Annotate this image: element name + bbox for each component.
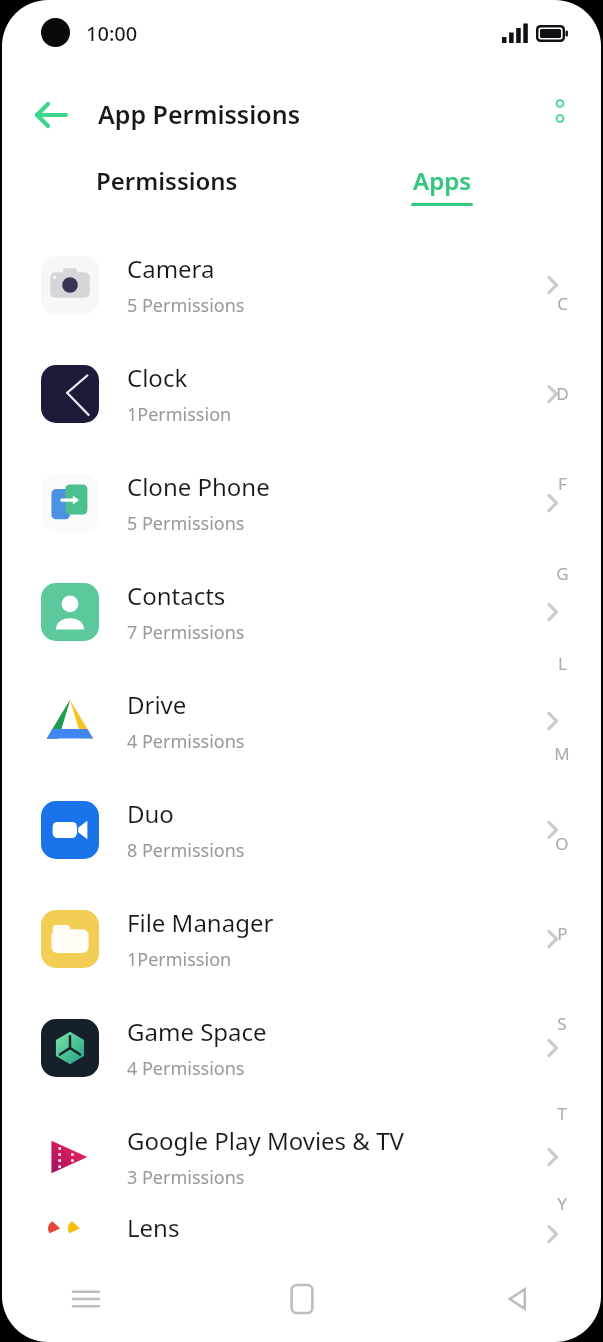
button[interactable]: Apps — [337, 152, 547, 222]
button[interactable]: Google Play Movies & TV — [2, 1102, 601, 1211]
button[interactable]: Duo — [2, 775, 601, 884]
button[interactable]: More options — [535, 86, 585, 136]
button[interactable]: G — [545, 556, 579, 590]
staticText: 5 Permissions — [127, 293, 245, 318]
staticText: Clone Phone — [127, 470, 270, 503]
staticText: Drive — [127, 688, 187, 721]
staticText: L — [558, 652, 567, 675]
button[interactable]: Camera — [2, 230, 601, 339]
staticText: T — [557, 1102, 567, 1125]
button[interactable]: Drive — [2, 666, 601, 775]
button[interactable]: T — [545, 1096, 579, 1130]
staticText: Duo — [127, 797, 174, 830]
staticText: Lens — [127, 1211, 180, 1244]
button[interactable]: M — [545, 736, 579, 770]
staticText: P — [557, 922, 568, 945]
button[interactable]: Game Space — [2, 993, 601, 1102]
staticText: C — [557, 292, 568, 315]
staticText: Apps — [413, 164, 472, 197]
button[interactable]: L — [545, 646, 579, 680]
button[interactable]: Permissions — [62, 152, 272, 222]
staticText: O — [555, 832, 569, 855]
button[interactable]: D — [545, 376, 579, 410]
button[interactable]: Clone Phone — [2, 448, 601, 557]
button[interactable]: P — [545, 916, 579, 950]
button[interactable]: Home — [258, 1256, 346, 1342]
staticText: Permissions — [96, 164, 238, 197]
staticText: 1Permission — [127, 402, 232, 427]
staticText: S — [557, 1012, 567, 1035]
button[interactable]: Lens — [2, 1211, 601, 1256]
button[interactable]: F — [545, 466, 579, 500]
button[interactable]: Recent apps — [42, 1256, 130, 1342]
staticText: Clock — [127, 361, 188, 394]
staticText: 4 Permissions — [127, 729, 245, 754]
staticText: Game Space — [127, 1015, 267, 1048]
staticText: 10:00 — [86, 20, 138, 47]
staticText: 3 Permissions — [127, 1165, 245, 1190]
staticText: 8 Permissions — [127, 838, 245, 863]
staticText: Google Play Movies & TV — [127, 1124, 404, 1157]
button[interactable]: Back — [473, 1256, 561, 1342]
staticText: F — [558, 472, 567, 495]
button[interactable]: S — [545, 1006, 579, 1040]
button[interactable]: Clock — [2, 339, 601, 448]
button[interactable]: Back — [22, 86, 80, 144]
button[interactable]: O — [545, 826, 579, 860]
staticText: 4 Permissions — [127, 1056, 245, 1081]
staticText: Y — [557, 1192, 567, 1215]
staticText: 7 Permissions — [127, 620, 245, 645]
button[interactable]: Y — [545, 1186, 579, 1220]
staticText: 1Permission — [127, 947, 232, 972]
staticText: M — [554, 742, 570, 765]
staticText: D — [556, 382, 569, 405]
staticText: 5 Permissions — [127, 511, 245, 536]
button[interactable]: Contacts — [2, 557, 601, 666]
button[interactable]: File Manager — [2, 884, 601, 993]
staticText: Camera — [127, 252, 215, 285]
staticText: Contacts — [127, 579, 226, 612]
button[interactable]: C — [545, 286, 579, 320]
staticText: G — [556, 562, 569, 585]
staticText: App Permissions — [98, 97, 300, 131]
staticText: File Manager — [127, 906, 274, 939]
